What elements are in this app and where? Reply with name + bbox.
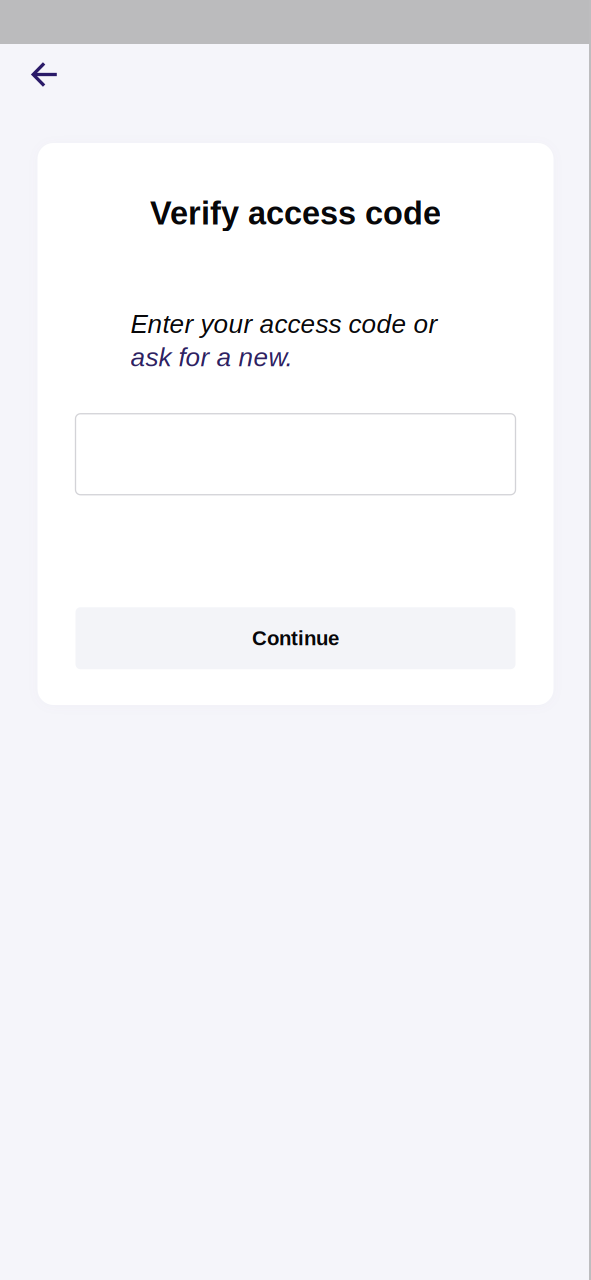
button[interactable]: Continue [75,607,515,669]
button[interactable]: ask for a new. [130,342,292,372]
staticText: Enter your access code or [130,309,437,338]
staticText: ask for a new. [130,342,292,372]
staticText: Continue [252,627,339,650]
staticText: Verify access code [150,195,441,231]
button[interactable]: Back [0,44,72,143]
button[interactable]: Access code [75,414,515,495]
